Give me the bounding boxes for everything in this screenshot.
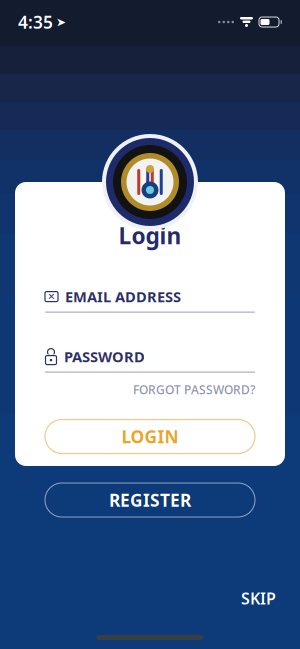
staticText: 4:35 xyxy=(18,10,53,33)
staticText: SKIP xyxy=(241,588,276,609)
staticText: LOGIN xyxy=(121,425,178,448)
staticText: FORGOT PASSWORD? xyxy=(133,382,255,397)
staticText: EMAIL ADDRESS xyxy=(65,287,181,306)
button[interactable]: LOGIN xyxy=(45,419,255,453)
staticText: ➤ xyxy=(56,15,66,29)
button[interactable]: FORGOT PASSWORD? xyxy=(133,382,255,397)
staticText: REGISTER xyxy=(109,488,191,511)
button[interactable]: REGISTER xyxy=(45,483,255,517)
button[interactable]: SKIP xyxy=(235,584,282,613)
staticText: Login xyxy=(118,220,181,251)
staticText: PASSWORD xyxy=(64,347,145,366)
staticText: ✕ xyxy=(47,291,55,302)
